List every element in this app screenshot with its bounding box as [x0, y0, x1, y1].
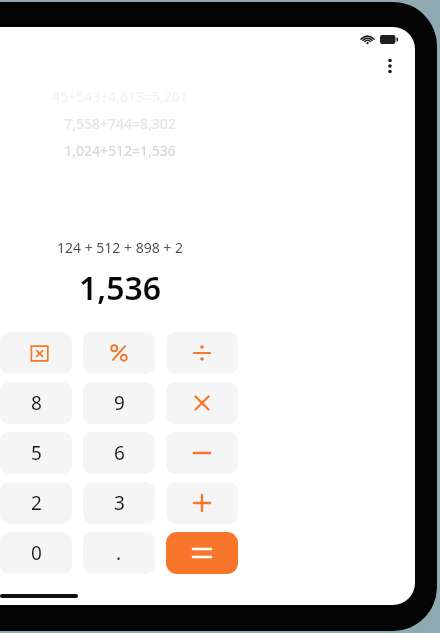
button[interactable]: Equals	[166, 532, 238, 574]
staticText: 1,536	[0, 266, 240, 310]
staticText: 8	[31, 390, 42, 416]
button[interactable]: Plus	[166, 482, 238, 524]
staticText: 3	[114, 490, 125, 516]
staticText: 1,024+512=1,536	[0, 141, 240, 160]
button[interactable]: 5	[0, 432, 72, 474]
button[interactable]: 2	[0, 482, 72, 524]
button[interactable]: .	[83, 532, 155, 574]
button[interactable]: 8	[0, 382, 72, 424]
button[interactable]: Divide	[166, 332, 238, 374]
staticText: 9	[114, 390, 125, 416]
button[interactable]: Percent	[83, 332, 155, 374]
staticText: 2	[31, 490, 42, 516]
button[interactable]: 3	[83, 482, 155, 524]
button[interactable]: Minus	[166, 432, 238, 474]
staticText: 0	[31, 540, 42, 566]
staticText: 5	[31, 440, 42, 466]
staticText: 7,558+744=8,302	[0, 114, 240, 133]
button[interactable]: Backspace	[0, 332, 72, 374]
staticText: 124 + 512 + 898 + 2	[0, 238, 240, 257]
button[interactable]: 6	[83, 432, 155, 474]
staticText: 6	[114, 440, 125, 466]
button[interactable]: 9	[83, 382, 155, 424]
button[interactable]: More options	[375, 51, 405, 81]
button[interactable]: Multiply	[166, 382, 238, 424]
staticText: .	[116, 540, 122, 566]
button[interactable]: 0	[0, 532, 72, 574]
staticText: 45+543+4,613=5,201	[0, 87, 240, 106]
